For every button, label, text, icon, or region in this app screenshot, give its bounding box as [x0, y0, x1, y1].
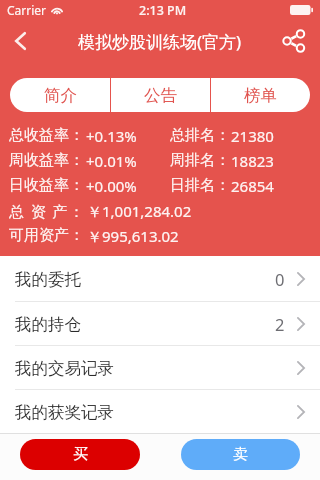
staticText: 我的委托 [15, 269, 81, 290]
button[interactable]: 我的委托 [0, 256, 320, 301]
staticText: 我的交易记录 [15, 358, 114, 379]
staticText: 总收益率： [9, 126, 84, 145]
staticText: 周收益率： [9, 151, 84, 170]
staticText: 0 [275, 268, 285, 290]
staticText: 模拟炒股训练场(官方) [78, 30, 242, 53]
button[interactable]: 卖 [181, 439, 300, 470]
staticText: 榜单 [244, 85, 277, 106]
staticText: 26854 [231, 176, 274, 196]
staticText: 18823 [231, 151, 274, 171]
staticText: 2:13 PM [139, 2, 187, 19]
staticText: 买 [73, 445, 88, 464]
button[interactable]: 我的交易记录 [0, 346, 320, 389]
staticText: 21380 [231, 126, 274, 146]
button[interactable]: 榜单 [211, 78, 310, 112]
staticText: +0.13% [86, 126, 137, 146]
staticText: ￥995,613.02 [87, 226, 179, 246]
staticText: 我的获奖记录 [15, 402, 114, 423]
staticText: +0.00% [86, 176, 137, 196]
staticText: 日排名： [170, 176, 230, 195]
button[interactable]: 公告 [111, 78, 210, 112]
staticText: 周排名： [170, 151, 230, 170]
button[interactable]: 我的获奖记录 [0, 390, 320, 433]
staticText: 总排名： [170, 126, 230, 145]
button[interactable]: Share [279, 26, 309, 56]
button[interactable]: Back [4, 26, 36, 56]
staticText: Carrier [7, 2, 47, 18]
staticText: 日收益率： [9, 176, 84, 195]
staticText: 卖 [233, 445, 248, 464]
staticText: 公告 [144, 85, 177, 106]
staticText: 我的持仓 [15, 314, 81, 335]
staticText: 可用资产： [9, 226, 84, 245]
button[interactable]: 买 [20, 439, 140, 470]
staticText: 总 资 产： [9, 201, 86, 221]
button[interactable]: 我的持仓 [0, 302, 320, 345]
staticText: 简介 [44, 85, 77, 106]
button[interactable]: 简介 [10, 78, 110, 112]
staticText: 2 [275, 313, 285, 335]
staticText: ￥1,001,284.02 [87, 201, 192, 221]
staticText: +0.01% [86, 151, 137, 171]
